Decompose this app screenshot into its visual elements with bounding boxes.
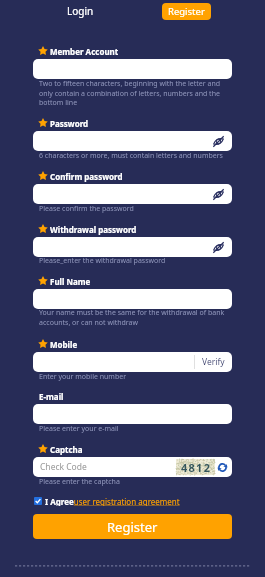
staticText: Check Code (40, 461, 87, 473)
staticText: Password (50, 118, 89, 129)
button[interactable]: Register (162, 3, 211, 20)
staticText: I Agreeuser registration agreement (45, 496, 180, 506)
staticText: Your name must be the same for the withd… (39, 308, 234, 327)
staticText: Please confirm the password (39, 204, 234, 214)
staticText: Captcha (50, 444, 83, 455)
button[interactable] (33, 237, 232, 257)
staticText: Login (67, 4, 94, 18)
staticText: Withdrawal password (50, 224, 137, 235)
button[interactable]: Captcha image 4812 (176, 459, 215, 475)
button[interactable] (33, 131, 232, 151)
staticText: 6 characters or more, must contain lette… (39, 151, 234, 161)
button[interactable]: Refresh captcha (217, 462, 228, 473)
staticText: Please_enter the withdrawal password (39, 256, 234, 266)
staticText: Please enter the captcha (39, 477, 234, 487)
button[interactable]: I Agreeuser registration agreement (34, 496, 180, 506)
staticText: Two to fifteen characters, beginning wit… (39, 79, 234, 107)
button[interactable] (33, 184, 232, 204)
staticText: Mobile (50, 339, 78, 350)
staticText: Member Account (50, 46, 119, 57)
staticText: Confirm password (50, 171, 123, 182)
button[interactable]: Verify (33, 352, 232, 372)
staticText: Register (168, 5, 205, 18)
staticText: Register (107, 518, 158, 536)
staticText: Verify (202, 356, 225, 368)
staticText: 4 8 1 2 (181, 460, 210, 475)
button[interactable]: Check Code (33, 457, 232, 477)
staticText: Enter your mobile number (39, 372, 234, 382)
staticText: Full Name (50, 276, 91, 287)
button[interactable] (33, 59, 232, 79)
button[interactable]: Verify (195, 352, 232, 372)
staticText: Please enter your e-mail (39, 424, 234, 434)
button[interactable] (33, 404, 232, 424)
button[interactable]: Register (33, 514, 232, 539)
button[interactable] (33, 289, 232, 309)
staticText: E-mail (39, 391, 64, 402)
